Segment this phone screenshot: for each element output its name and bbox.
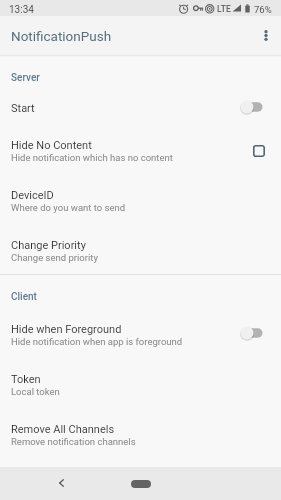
staticText: Server [11, 72, 40, 84]
staticText: NotificationPush [11, 28, 112, 44]
staticText: Remove All Channels [11, 423, 115, 436]
button[interactable]: DeviceID [0, 175, 281, 225]
staticText: Hide notification which has no content [11, 152, 173, 163]
button[interactable]: Change Priority [0, 225, 281, 275]
staticText: 13:34 [9, 4, 34, 16]
staticText: DeviceID [11, 189, 54, 202]
staticText: Local token [11, 386, 60, 397]
staticText: Where do you want to send [11, 202, 126, 213]
staticText: LTE [217, 4, 231, 14]
button[interactable]: More options [251, 16, 281, 55]
staticText: Change Priority [11, 239, 86, 252]
staticText: Token [11, 373, 41, 386]
button[interactable]: Hide No Content [0, 125, 281, 175]
button[interactable]: Token [0, 359, 281, 409]
staticText: Hide notification when app is foreground [11, 336, 183, 347]
staticText: Change send priority [11, 252, 98, 263]
staticText: Client [11, 291, 37, 303]
button[interactable]: Back [50, 472, 72, 494]
staticText: Remove notification channels [11, 436, 136, 447]
staticText: Hide when Foreground [11, 323, 122, 336]
button[interactable]: Hide when Foreground [0, 309, 281, 359]
button[interactable]: Remove All Channels [0, 409, 281, 459]
button[interactable]: Start [0, 88, 281, 138]
staticText: 76% [254, 4, 272, 15]
staticText: Start [11, 102, 35, 115]
staticText: Hide No Content [11, 139, 92, 152]
button[interactable]: Home [131, 480, 151, 488]
